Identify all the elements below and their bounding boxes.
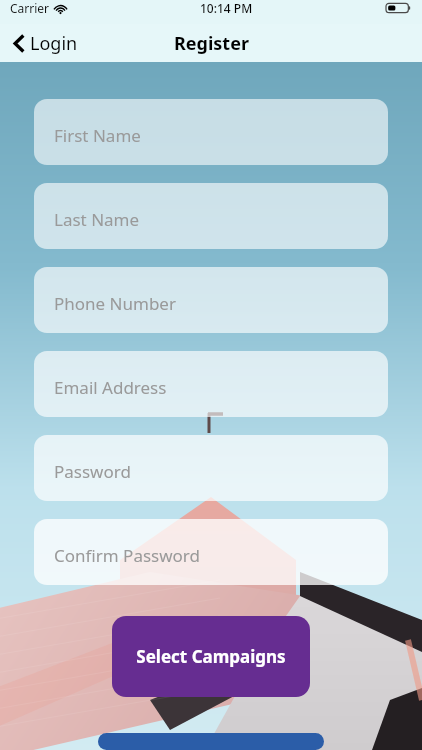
staticText: Password — [54, 460, 131, 483]
staticText: Select Campaigns — [136, 645, 286, 668]
staticText: Email Address — [54, 376, 167, 399]
button[interactable]: Login — [10, 27, 82, 60]
button[interactable]: Password — [34, 435, 388, 501]
button[interactable] — [98, 733, 324, 750]
staticText: Phone Number — [54, 292, 176, 315]
staticText: Login — [30, 31, 78, 56]
button[interactable]: Confirm Password — [34, 519, 388, 585]
staticText: Confirm Password — [54, 544, 200, 567]
button[interactable]: Email Address — [34, 351, 388, 417]
button[interactable]: Phone Number — [34, 267, 388, 333]
button[interactable]: Select Campaigns — [112, 616, 310, 697]
staticText: Carrier — [10, 0, 50, 16]
button[interactable]: Last Name — [34, 183, 388, 249]
staticText: Last Name — [54, 208, 140, 231]
staticText: First Name — [54, 124, 141, 147]
staticText: Register — [174, 31, 249, 56]
staticText: 10:14 PM — [200, 0, 253, 16]
button[interactable]: First Name — [34, 99, 388, 165]
